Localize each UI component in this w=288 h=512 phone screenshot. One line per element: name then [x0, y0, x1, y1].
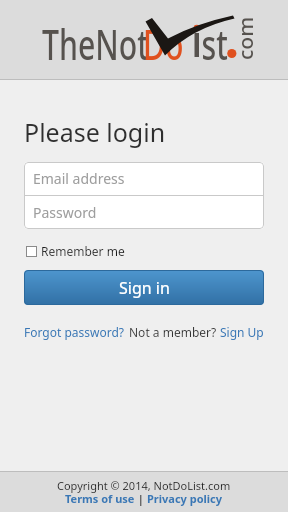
- button[interactable]: Sign Up: [220, 324, 264, 340]
- button[interactable]: Sign in: [24, 270, 264, 305]
- button[interactable]: Password: [24, 196, 264, 229]
- staticText: Remember me: [41, 243, 125, 259]
- staticText: Not a member?: [129, 324, 220, 340]
- staticText: Please login: [24, 115, 166, 149]
- staticText: Sign in: [119, 277, 170, 299]
- button[interactable]: Remember me: [24, 243, 125, 259]
- staticText: |: [135, 491, 147, 506]
- staticText: Password: [33, 203, 97, 222]
- staticText: Copyright © 2014, NotDoList.com: [57, 478, 231, 493]
- button[interactable]: Email address: [24, 162, 264, 195]
- staticText: Email address: [33, 169, 125, 188]
- button[interactable]: Forgot password?: [24, 324, 125, 340]
- button[interactable]: Privacy policy: [147, 491, 223, 506]
- button[interactable]: Terms of use: [65, 491, 135, 506]
